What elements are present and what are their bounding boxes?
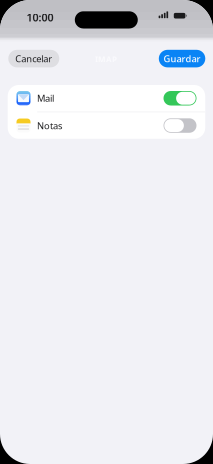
staticText: Cancelar	[15, 52, 52, 65]
button[interactable]: Notas	[8, 112, 205, 139]
staticText: Mail	[37, 92, 54, 104]
button[interactable]: Cancelar	[8, 50, 59, 67]
staticText: 10:00	[26, 10, 53, 24]
button[interactable]: Guardar	[159, 50, 205, 67]
staticText: Guardar	[164, 52, 201, 65]
button[interactable]: Mail	[8, 85, 205, 111]
staticText: Notas	[37, 119, 62, 132]
